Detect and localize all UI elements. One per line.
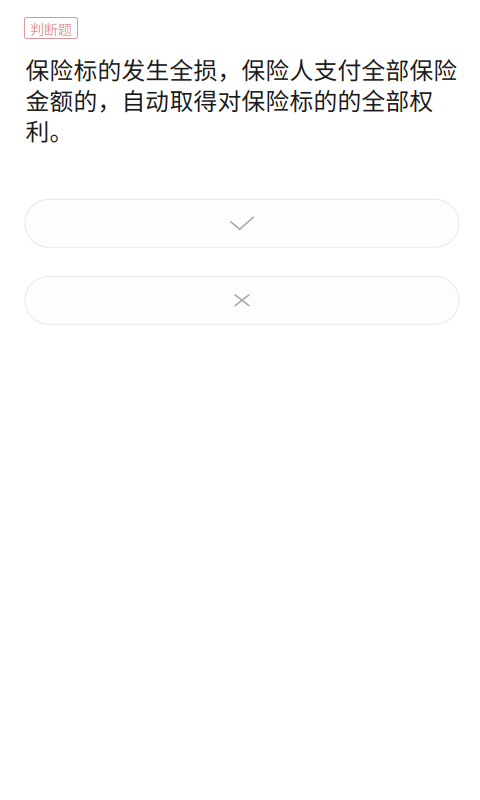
button[interactable]: 正确 [25,199,459,247]
staticText: 保险标的发生全损，保险人支付全部保险金额的，自动取得对保险标的的全部权利。 [26,52,458,147]
staticText: 判断题 [30,19,72,39]
button[interactable]: 错误 [25,276,459,324]
